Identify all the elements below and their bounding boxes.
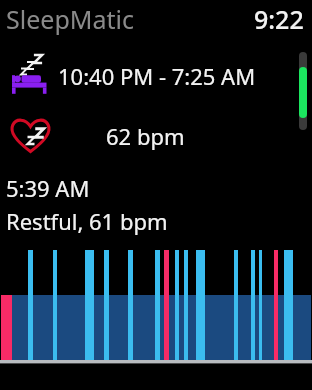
staticText: Restful, 61 bpm	[6, 206, 168, 236]
other: Sleeping heart rate	[8, 112, 54, 158]
button[interactable]: Sleeping heart rate	[0, 109, 312, 163]
button[interactable]: Sleep session	[0, 49, 312, 103]
button[interactable]: 5:39 AM	[6, 173, 306, 236]
button[interactable]: Sleep stage chart	[0, 246, 312, 368]
staticText: 62 bpm	[106, 121, 185, 151]
staticText: SleepMatic	[6, 2, 134, 36]
other: Sleep session	[8, 52, 56, 100]
staticText: 9:22	[254, 2, 304, 36]
staticText: 5:39 AM	[6, 173, 90, 203]
staticText: 10:40 PM - 7:25 AM	[58, 61, 256, 91]
